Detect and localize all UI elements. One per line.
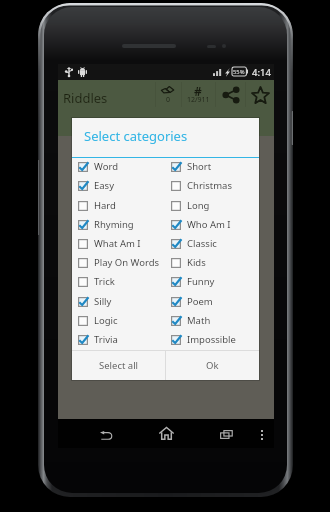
staticText: Rhyming [94,218,134,231]
button[interactable]: Hard [72,196,165,215]
button[interactable]: Math [165,311,258,330]
staticText: Play On Words [94,256,160,269]
button[interactable]: Impossible [165,330,258,349]
button[interactable]: Back [86,419,126,448]
staticText: Math [187,314,211,327]
button[interactable]: Home [146,419,186,448]
staticText: Select categories [84,127,188,145]
button[interactable]: Short [165,157,258,176]
button[interactable]: Long [165,196,258,215]
staticText: 0 [166,95,171,105]
staticText: Hard [94,199,116,212]
button[interactable]: More options [252,419,272,448]
button[interactable]: Rhyming [72,215,165,234]
button[interactable]: Kids [165,253,258,272]
staticText: Who Am I [187,218,231,231]
staticText: Trick [94,275,115,288]
staticText: Riddles [63,89,108,107]
staticText: 4:14 [252,66,271,79]
button[interactable]: Play On Words [72,253,165,272]
staticText: Poem [187,295,213,308]
button[interactable]: Classic [165,234,258,253]
button[interactable]: Poem [165,292,258,311]
staticText: Funny [187,275,215,288]
staticText: Logic [94,314,118,327]
button[interactable]: Ok [166,351,259,380]
staticText: Long [187,199,210,212]
button[interactable]: Trivia [72,330,165,349]
button[interactable]: Christmas [165,176,258,195]
staticText: Impossible [187,333,236,346]
button[interactable]: Word [72,157,165,176]
staticText: Trivia [94,333,118,346]
staticText: 12/911 [187,95,210,105]
button[interactable]: Easy [72,176,165,195]
staticText: Christmas [187,179,232,192]
button[interactable]: Favorite [246,80,274,108]
staticText: Classic [187,237,217,250]
staticText: Silly [94,295,112,308]
button[interactable]: Select all [72,351,165,380]
staticText: # [194,83,202,99]
button[interactable]: Funny [165,272,258,291]
button[interactable]: Recent apps [206,419,246,448]
button[interactable]: Riddle number [181,80,215,108]
staticText: Ok [206,359,219,372]
staticText: Easy [94,179,115,192]
button[interactable]: Share [216,80,245,108]
staticText: Word [94,160,118,173]
button[interactable]: Logic [72,311,165,330]
button[interactable]: Silly [72,292,165,311]
button[interactable]: Trick [72,272,165,291]
staticText: Short [187,160,212,173]
staticText: What Am I [94,237,141,250]
button[interactable]: Who Am I [165,215,258,234]
button[interactable]: What Am I [72,234,165,253]
button[interactable]: Solved count [156,80,181,108]
staticText: 55% [233,68,245,76]
staticText: Kids [187,256,206,269]
staticText: Select all [99,359,139,372]
